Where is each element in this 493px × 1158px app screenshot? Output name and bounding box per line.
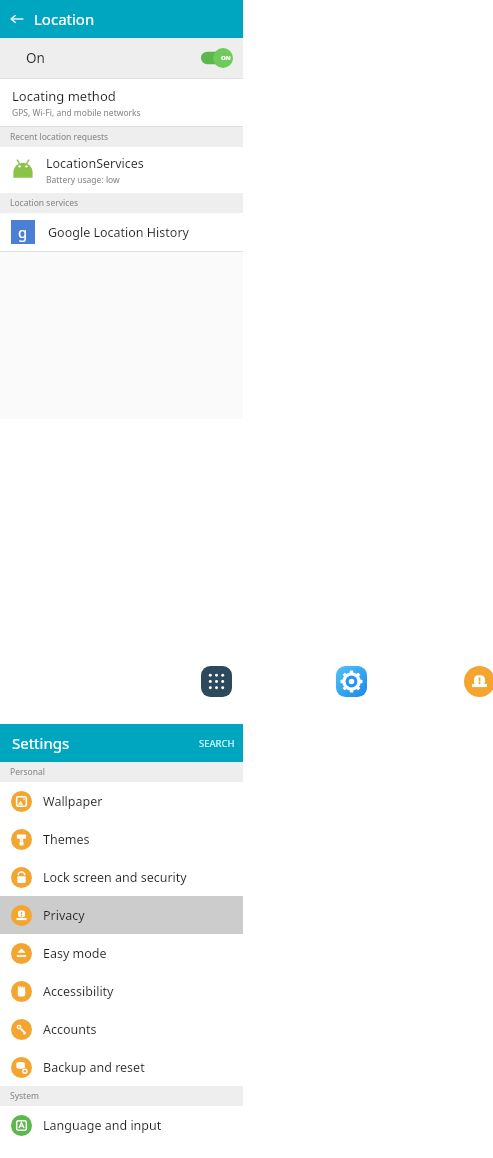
staticText: ON xyxy=(221,54,231,62)
button[interactable]: Apps xyxy=(199,664,234,699)
button[interactable]: Locating method xyxy=(0,79,243,126)
button[interactable]: g xyxy=(0,213,243,251)
button[interactable]: Accessibility xyxy=(0,972,243,1010)
staticText: Wallpaper xyxy=(43,793,103,810)
staticText: Easy mode xyxy=(43,945,107,962)
staticText: Language and input xyxy=(43,1117,162,1134)
button[interactable]: Backup and reset xyxy=(0,1048,243,1086)
staticText: SEARCH xyxy=(199,737,235,750)
staticText: Location xyxy=(34,9,95,29)
button[interactable]: Settings xyxy=(0,724,243,762)
staticText: Locating method xyxy=(12,87,116,105)
button[interactable]: Language and input xyxy=(0,1106,243,1144)
button[interactable]: Back xyxy=(0,0,243,38)
staticText: Google Location History xyxy=(48,224,189,241)
button[interactable]: On xyxy=(0,38,243,78)
staticText: GPS, Wi-Fi, and mobile networks xyxy=(12,107,141,119)
staticText: LocationServices xyxy=(46,155,144,172)
staticText: Location services xyxy=(10,197,79,209)
button[interactable]: Easy mode xyxy=(0,934,243,972)
button[interactable]: Accounts xyxy=(0,1010,243,1048)
button[interactable]: Settings xyxy=(334,664,369,699)
button[interactable]: Privacy xyxy=(0,896,243,934)
staticText: Backup and reset xyxy=(43,1059,145,1076)
staticText: g xyxy=(18,222,28,242)
button[interactable]: Themes xyxy=(0,820,243,858)
staticText: Lock screen and security xyxy=(43,869,187,886)
staticText: Settings xyxy=(12,733,70,753)
button[interactable]: Wallpaper xyxy=(0,782,243,820)
button[interactable]: Back xyxy=(0,0,34,38)
staticText: Accounts xyxy=(43,1021,97,1038)
staticText: Themes xyxy=(43,831,90,848)
staticText: On xyxy=(26,49,45,67)
button[interactable]: Privacy xyxy=(462,664,493,699)
button[interactable]: LocationServices xyxy=(0,147,243,193)
staticText: System xyxy=(10,1090,39,1102)
staticText: Privacy xyxy=(43,907,85,924)
staticText: Battery usage: low xyxy=(46,174,120,186)
staticText: Accessibility xyxy=(43,983,114,1000)
button[interactable]: SEARCH xyxy=(199,737,243,750)
staticText: Personal xyxy=(10,766,45,778)
staticText: Recent location requests xyxy=(10,131,109,143)
button[interactable]: Lock screen and security xyxy=(0,858,243,896)
